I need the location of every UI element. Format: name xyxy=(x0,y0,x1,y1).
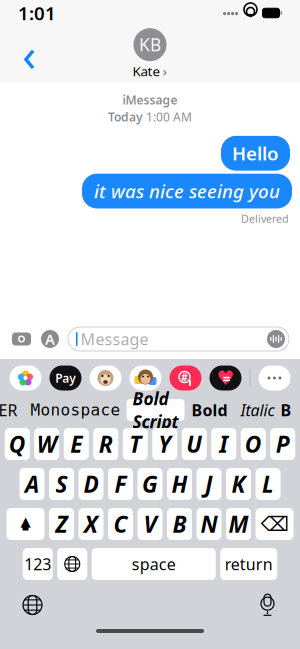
staticText: X xyxy=(84,509,98,539)
staticText: B xyxy=(172,509,186,539)
staticText: Italic xyxy=(240,399,274,421)
button[interactable]: Switch keyboard xyxy=(17,590,47,620)
button[interactable]: Monospace xyxy=(24,401,126,419)
button[interactable]: N xyxy=(196,508,221,540)
staticText: Today xyxy=(108,109,143,125)
button[interactable]: Y xyxy=(152,428,177,460)
button[interactable]: Z xyxy=(49,508,74,540)
staticText: Message xyxy=(80,328,148,350)
button[interactable]: return xyxy=(220,548,277,580)
button[interactable]: Kate, contact details xyxy=(132,28,167,80)
staticText: K xyxy=(231,469,245,499)
staticText: G xyxy=(142,469,158,499)
staticText: Kate xyxy=(132,62,160,80)
button[interactable]: Shift xyxy=(6,508,44,540)
staticText: ♥ xyxy=(216,367,234,389)
button[interactable]: 123 xyxy=(23,548,53,580)
button[interactable]: R xyxy=(93,428,118,460)
button[interactable]: G xyxy=(137,468,162,500)
button[interactable]: ER xyxy=(0,399,24,421)
button[interactable]: F xyxy=(108,468,133,500)
button[interactable]: U xyxy=(182,428,207,460)
staticText: 123 xyxy=(24,553,51,575)
staticText: ‹ xyxy=(22,24,36,84)
button[interactable]: More apps xyxy=(258,365,290,390)
staticText: ⌫ xyxy=(260,513,288,535)
button[interactable]: I xyxy=(211,428,236,460)
button[interactable]: Italic xyxy=(234,399,280,421)
staticText: C xyxy=(113,509,127,539)
button[interactable]: W xyxy=(34,428,59,460)
staticText: 1:00 AM xyxy=(146,109,192,125)
staticText: KB xyxy=(139,33,161,56)
button[interactable]: Delete xyxy=(255,508,293,540)
staticText: A xyxy=(45,329,55,349)
staticText: Monospace xyxy=(30,401,120,419)
button[interactable]: X xyxy=(78,508,103,540)
button[interactable]: Images xyxy=(169,365,201,390)
staticText: I xyxy=(219,429,228,459)
button[interactable]: Bold xyxy=(184,399,234,421)
button[interactable]: Photos xyxy=(9,365,41,390)
staticText: U xyxy=(186,429,202,459)
staticText: Z xyxy=(55,509,67,539)
staticText: T xyxy=(129,429,141,459)
button[interactable]: Memoji xyxy=(89,365,121,390)
staticText: E xyxy=(70,429,82,459)
button[interactable]: B xyxy=(280,399,291,421)
staticText: space xyxy=(132,553,176,575)
button[interactable]: M xyxy=(226,508,251,540)
button[interactable]: K xyxy=(226,468,251,500)
staticText: Bold Script xyxy=(132,387,178,433)
staticText: H xyxy=(171,469,187,499)
button[interactable]: S xyxy=(49,468,74,500)
staticText: J xyxy=(205,469,213,499)
button[interactable]: Back xyxy=(12,32,46,76)
staticText: Delivered xyxy=(241,211,289,226)
button[interactable]: space xyxy=(92,548,216,580)
button[interactable]: Record audio message xyxy=(267,330,285,348)
button[interactable]: D xyxy=(78,468,103,500)
staticText: R xyxy=(99,429,113,459)
staticText: › xyxy=(162,62,167,80)
button[interactable]: C xyxy=(108,508,133,540)
button[interactable]: E xyxy=(64,428,89,460)
staticText: N xyxy=(200,509,217,539)
staticText: V xyxy=(143,509,156,539)
staticText: M xyxy=(228,509,248,539)
button[interactable]: Camera xyxy=(11,330,32,347)
button[interactable]: Apps xyxy=(41,329,59,349)
button[interactable]: A xyxy=(19,468,44,500)
staticText: D xyxy=(83,469,98,499)
button[interactable]: P xyxy=(270,428,295,460)
button[interactable]: L xyxy=(255,468,280,500)
staticText: P xyxy=(276,429,290,459)
staticText: S xyxy=(55,469,67,499)
staticText: Pay xyxy=(55,370,76,386)
button[interactable]: V xyxy=(137,508,162,540)
button[interactable]: H xyxy=(167,468,192,500)
staticText: 1:01 xyxy=(18,1,56,25)
button[interactable]: Apple Pay xyxy=(49,365,81,390)
button[interactable]: Dictate xyxy=(252,590,282,620)
staticText: •••• xyxy=(222,6,238,20)
button[interactable]: Bold Script xyxy=(126,399,184,421)
button[interactable]: B xyxy=(167,508,192,540)
staticText: F xyxy=(114,469,126,499)
button[interactable]: Stickers xyxy=(129,365,161,390)
button[interactable]: T xyxy=(123,428,148,460)
button[interactable]: Digital Touch xyxy=(209,365,241,390)
staticText: O xyxy=(245,429,262,459)
staticText: B xyxy=(280,399,291,421)
staticText: L xyxy=(262,469,274,499)
button[interactable]: O xyxy=(241,428,266,460)
button[interactable]: Q xyxy=(5,428,30,460)
staticText: W xyxy=(37,429,57,459)
staticText: # xyxy=(181,370,188,384)
staticText: it was nice seeing you xyxy=(94,179,280,203)
staticText: Hello xyxy=(232,141,279,166)
button[interactable]: J xyxy=(196,468,221,500)
staticText: Bold xyxy=(191,399,227,421)
button[interactable]: Switch keyboard xyxy=(57,548,87,580)
staticText: ▲ xyxy=(20,514,30,529)
